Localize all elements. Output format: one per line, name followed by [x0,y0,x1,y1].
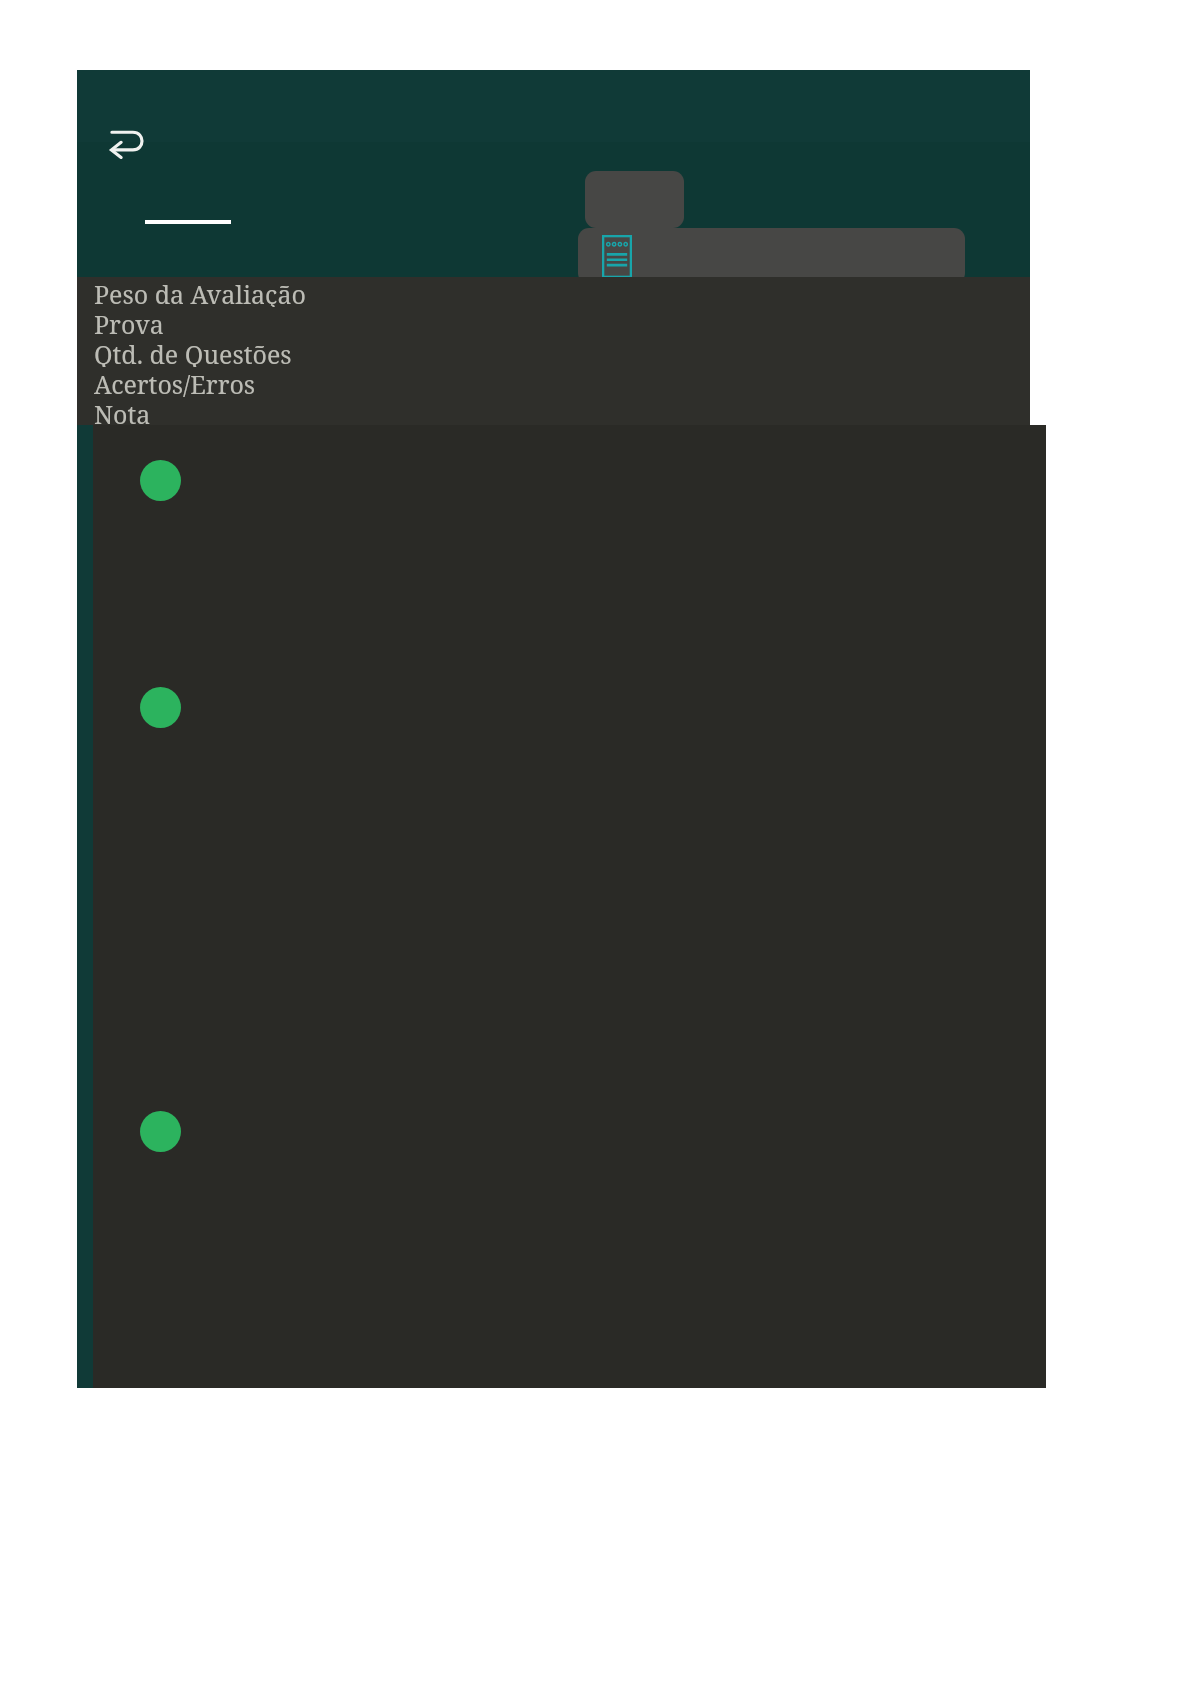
staticText: Peso da Avaliação [94,277,306,307]
button[interactable]: Status [140,687,181,728]
button[interactable]: Prova [94,307,1047,337]
staticText: Nota [94,397,151,425]
staticText: Acertos/Erros [94,367,256,397]
button[interactable]: Peso da Avaliação [94,277,1047,307]
button[interactable]: Status [140,1111,181,1152]
staticText: Qtd. de Questões [94,337,292,367]
button[interactable]: Voltar [97,114,157,174]
button[interactable]: Acertos/Erros [94,367,1047,397]
other: Documento [602,235,632,278]
button[interactable]: Documento [578,228,965,284]
button[interactable]: Nota [94,397,1047,425]
button[interactable]: Opção [585,171,684,228]
button[interactable]: Qtd. de Questões [94,337,1047,367]
staticText: Prova [94,307,164,337]
button[interactable]: Status [140,460,181,501]
